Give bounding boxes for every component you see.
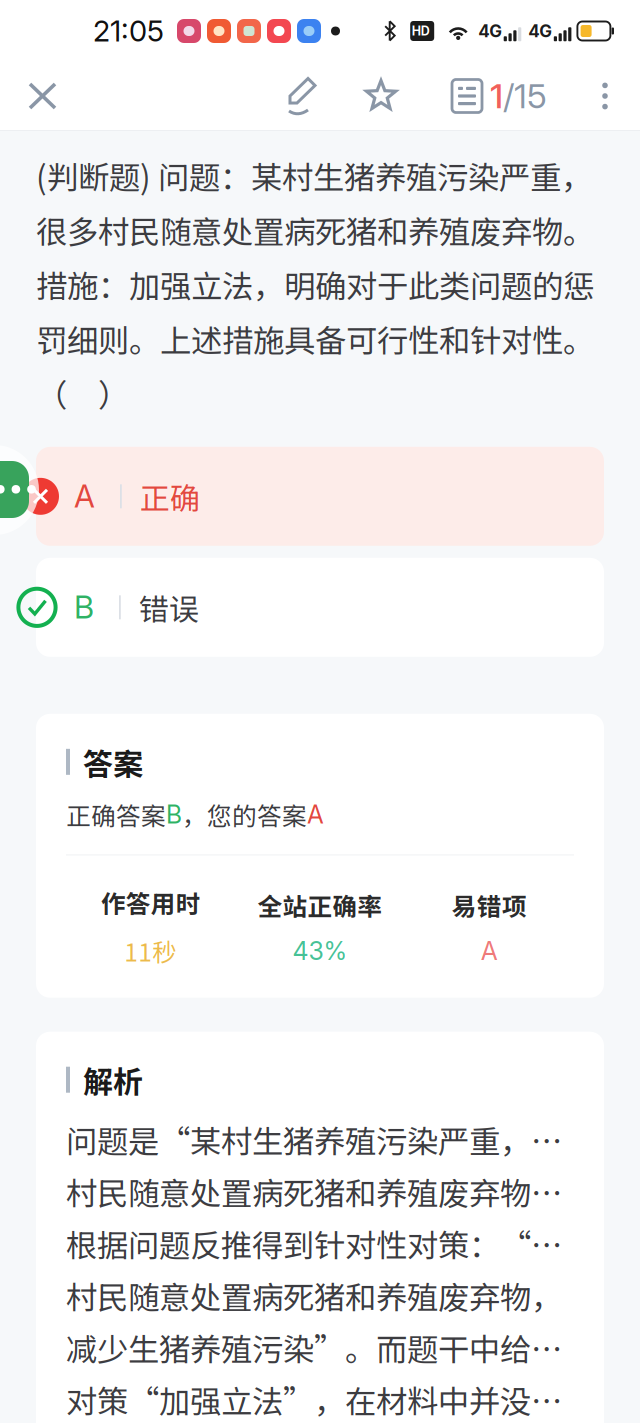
staticText: 21:05 bbox=[93, 13, 164, 49]
staticText: 4G bbox=[478, 21, 502, 41]
button[interactable]: 关闭 bbox=[0, 63, 81, 129]
staticText: 4G bbox=[528, 21, 552, 41]
staticText: HD bbox=[412, 23, 430, 38]
button[interactable]: 更多 bbox=[579, 63, 631, 129]
staticText: ，您的答案 bbox=[182, 797, 307, 832]
staticText: B bbox=[166, 800, 182, 830]
staticText: A bbox=[481, 936, 498, 966]
staticText: /15 bbox=[503, 75, 547, 116]
staticText: (判断题) 问题：某村生猪养殖污染严重，很多村民随意处置病死猪和养殖废弃物。措施… bbox=[36, 153, 594, 416]
staticText: 43% bbox=[292, 936, 347, 966]
button[interactable]: 收藏 bbox=[349, 63, 413, 128]
staticText: 解析 bbox=[83, 1058, 143, 1101]
staticText: 村民随意处置病死猪和养殖废弃物。” bbox=[66, 1169, 590, 1214]
staticText: 正确答案 bbox=[66, 797, 166, 832]
button[interactable]: A bbox=[0, 447, 640, 546]
staticText: 11秒 bbox=[124, 933, 177, 969]
staticText: B bbox=[74, 589, 94, 626]
staticText: 减少生猪养殖污染”。而题干中给出的 bbox=[66, 1325, 590, 1370]
staticText: 对策“加强立法”，在材料中并没有明确 bbox=[66, 1377, 590, 1422]
button[interactable]: B bbox=[0, 558, 640, 657]
staticText: 作答用时 bbox=[101, 884, 201, 920]
staticText: 全站正确率 bbox=[257, 887, 382, 923]
staticText: 易错项 bbox=[452, 887, 527, 923]
staticText: 答案 bbox=[83, 740, 143, 783]
button[interactable]: 1 bbox=[436, 61, 561, 130]
staticText: 村民随意处置病死猪和养殖废弃物， bbox=[66, 1273, 562, 1318]
staticText: 错误 bbox=[139, 586, 199, 629]
button[interactable]: 笔记 bbox=[269, 64, 335, 128]
staticText: 问题是“某村生猪养殖污染严重，很多 bbox=[66, 1117, 590, 1162]
staticText: A bbox=[307, 800, 324, 830]
staticText: A bbox=[74, 478, 95, 515]
staticText: 根据问题反推得到针对性对策：“禁止 bbox=[66, 1221, 590, 1266]
button[interactable]: 更多操作 bbox=[0, 445, 42, 535]
staticText: 1 bbox=[490, 75, 503, 116]
staticText: 正确 bbox=[140, 475, 200, 518]
